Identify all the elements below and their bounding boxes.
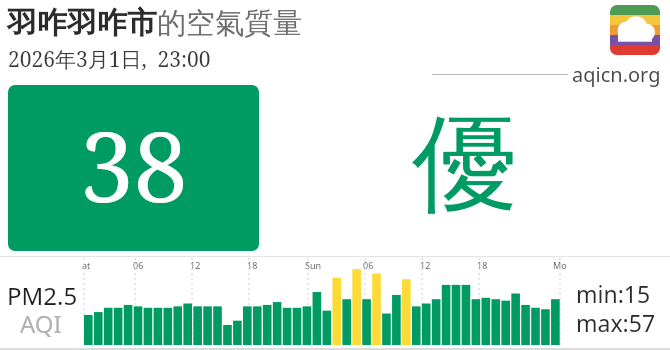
staticText: 06 [133,259,144,271]
staticText: AQI [20,307,62,340]
staticText: 優 [412,98,518,232]
staticText: min:15 [576,278,651,309]
staticText: 的空氣質量 [157,5,302,42]
staticText: 06 [363,259,374,271]
staticText: PM2.5 [7,279,78,312]
staticText: Mo [553,259,567,271]
staticText: aqicn.org [572,61,661,88]
staticText: 12 [190,259,201,271]
staticText: 2026年3月1日, 23:00 [8,45,211,74]
button[interactable]: aqicn.org logo [610,5,660,55]
staticText: 12 [420,259,431,271]
staticText: 18 [477,259,488,271]
button[interactable]: 38 [8,85,259,251]
staticText: 羽咋羽咋市 [7,4,157,42]
staticText: 38 [80,99,188,230]
staticText: 18 [247,259,258,271]
staticText: at [82,259,91,271]
staticText: Sun [305,259,322,271]
staticText: max:57 [576,307,656,338]
